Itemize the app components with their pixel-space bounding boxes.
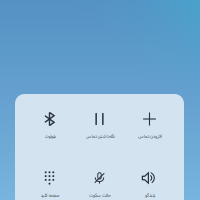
staticText: بلندگو <box>144 192 154 199</box>
staticText: افزودن تماس <box>137 133 161 140</box>
button[interactable]: صفحه کلید <box>24 171 74 198</box>
staticText: بلوتوث <box>44 133 55 140</box>
staticText: نگه‌داشتن تماس <box>85 133 114 140</box>
button[interactable]: حالت سکوت <box>74 171 124 198</box>
button[interactable]: افزودن تماس <box>124 112 174 139</box>
button[interactable]: بلوتوث <box>24 112 74 139</box>
button[interactable]: نگه‌داشتن تماس <box>74 112 124 139</box>
button[interactable]: بلندگو <box>124 171 174 198</box>
staticText: صفحه کلید <box>40 192 59 199</box>
staticText: حالت سکوت <box>88 192 110 199</box>
